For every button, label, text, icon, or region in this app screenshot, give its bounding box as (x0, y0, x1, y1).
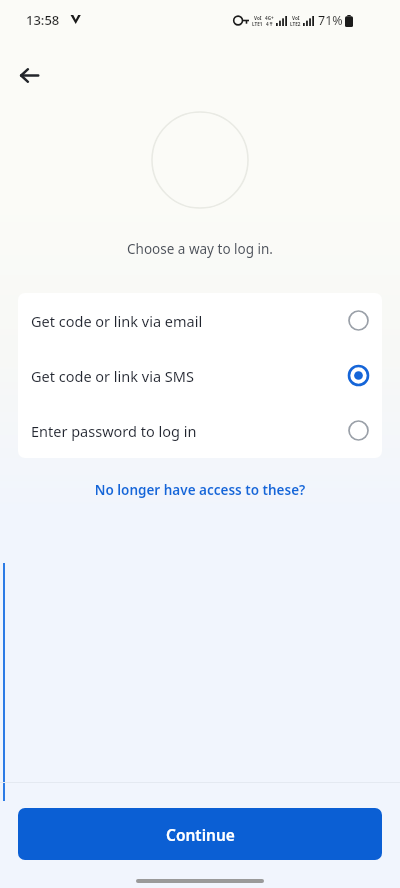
button[interactable]: Continue (18, 808, 382, 860)
staticText: Get code or link via email (31, 311, 203, 331)
button[interactable]: Back (8, 54, 50, 96)
staticText: 71% (318, 12, 343, 29)
staticText: VoI (292, 15, 300, 21)
staticText: Continue (166, 824, 235, 845)
button[interactable]: No longer have access to these? (0, 478, 400, 502)
staticText: Enter password to log in (31, 421, 197, 441)
staticText: LTE2 (290, 21, 301, 27)
staticText: 13:58 (26, 11, 60, 29)
button[interactable]: Enter password to log in (18, 403, 382, 458)
staticText: 4G+ (265, 15, 274, 21)
staticText: No longer have access to these? (0, 481, 400, 499)
staticText: LTE1 (252, 21, 263, 27)
button[interactable]: Get code or link via SMS (18, 348, 382, 403)
staticText: Get code or link via SMS (31, 366, 194, 386)
staticText: VoI (254, 15, 262, 21)
staticText: Choose a way to log in. (0, 240, 400, 258)
button[interactable]: Get code or link via email (18, 293, 382, 348)
staticText: 4 ₸ (266, 21, 273, 27)
